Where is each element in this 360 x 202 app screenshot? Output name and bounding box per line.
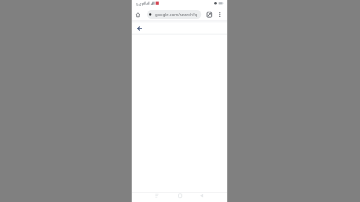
- button[interactable]: Recent apps: [150, 192, 165, 202]
- button[interactable]: Share page: [204, 10, 215, 21]
- button[interactable]: More options: [215, 10, 225, 20]
- staticText: 5:41: [136, 2, 144, 7]
- button[interactable]: Search or type web address: [147, 10, 201, 20]
- staticText: google.com/search?q: [155, 12, 198, 18]
- button[interactable]: Home: [172, 192, 187, 202]
- button[interactable]: Back: [194, 192, 209, 202]
- button[interactable]: Home page: [134, 9, 145, 20]
- button[interactable]: Back: [133, 23, 146, 36]
